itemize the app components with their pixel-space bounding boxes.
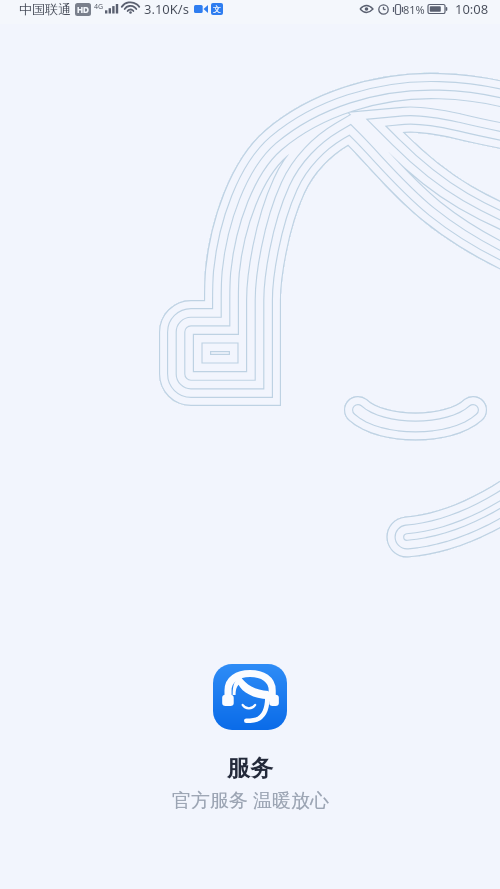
staticText: 中国联通 bbox=[19, 1, 71, 17]
staticText: 文 bbox=[213, 4, 221, 14]
staticText: HD bbox=[77, 4, 89, 15]
staticText: 81% bbox=[403, 2, 425, 17]
staticText: 4G bbox=[94, 2, 104, 12]
staticText: 3.10K/s bbox=[144, 0, 189, 18]
staticText: 10:08 bbox=[455, 0, 489, 18]
staticText: 服务 bbox=[227, 754, 273, 783]
staticText: 官方服务 温暖放心 bbox=[172, 787, 329, 813]
